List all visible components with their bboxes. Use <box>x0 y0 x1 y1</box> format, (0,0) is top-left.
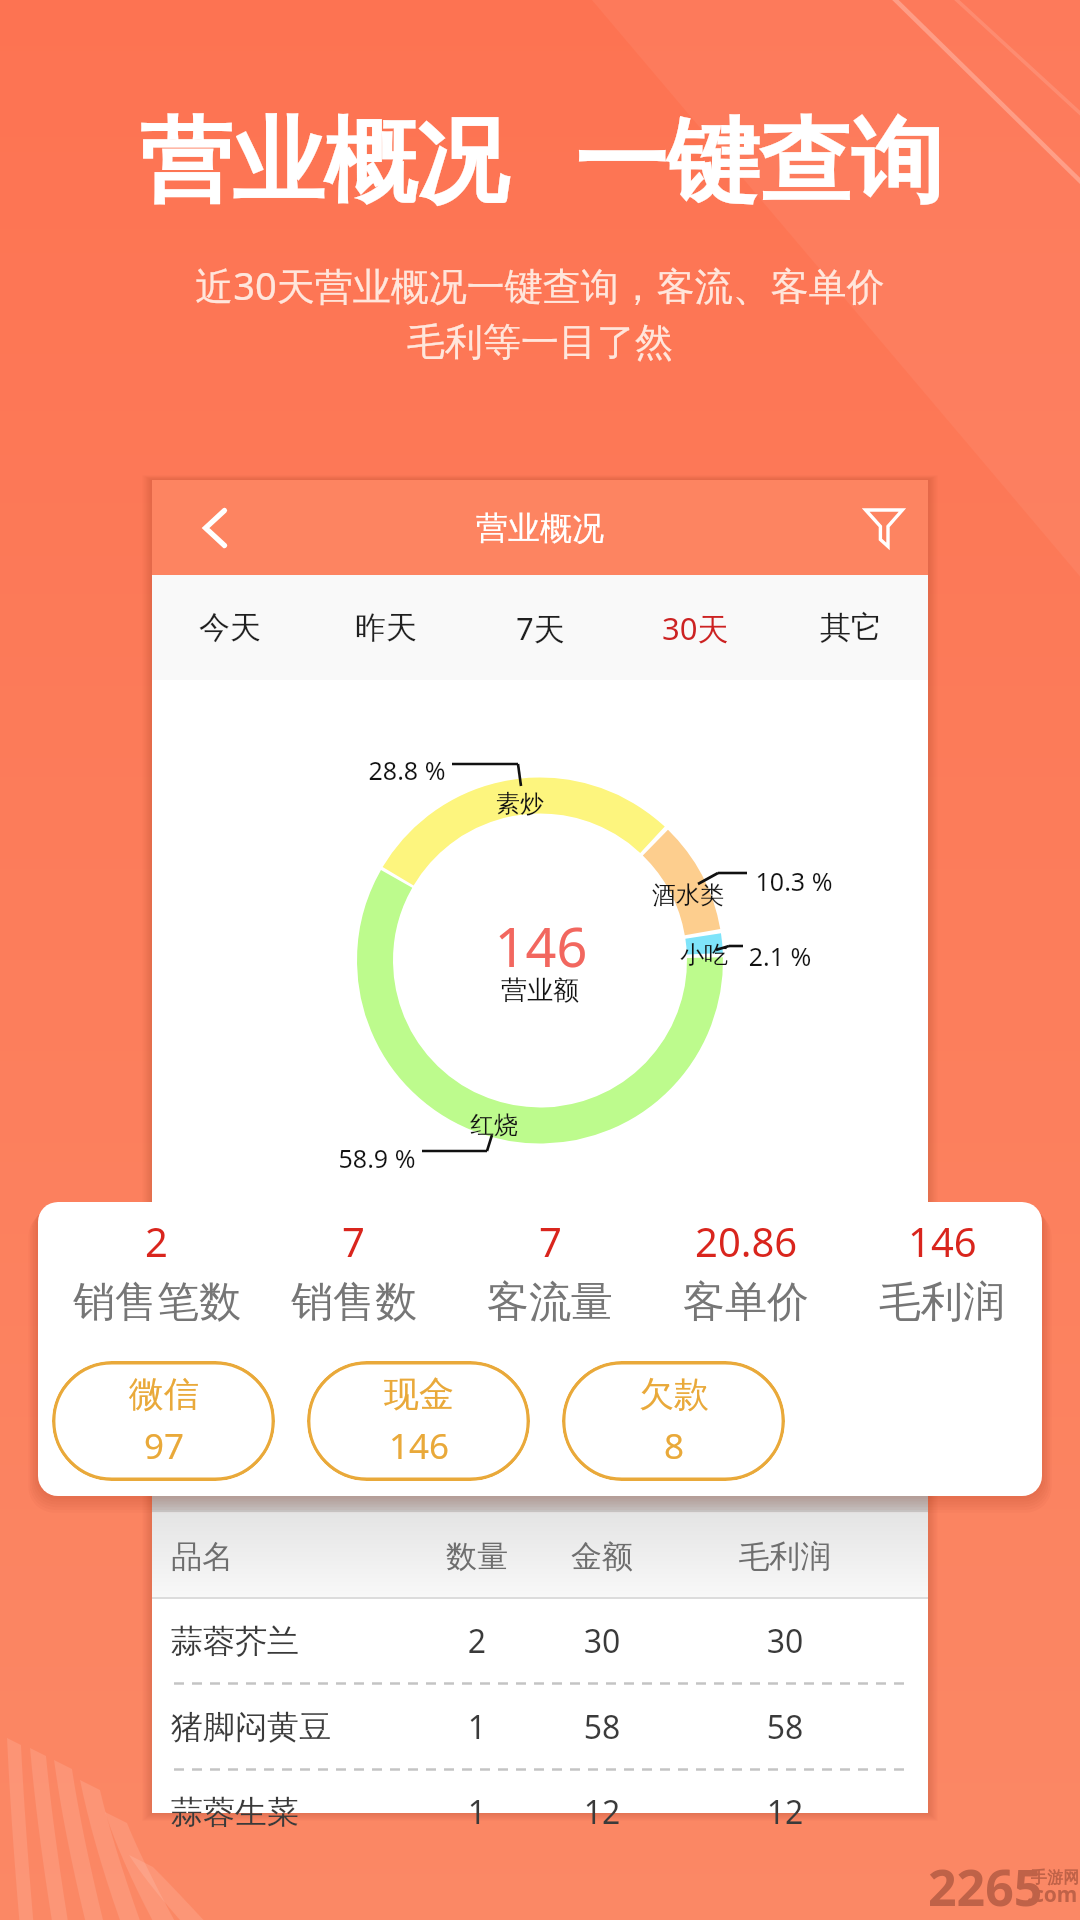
button[interactable]: 微信 <box>52 1361 275 1481</box>
staticText: 客流量 <box>487 1276 613 1329</box>
staticText: 其它 <box>820 608 882 647</box>
staticText: 猪脚闷黄豆 <box>171 1707 331 1747</box>
staticText: 营业概况 <box>476 508 604 548</box>
staticText: 毛利润 <box>715 1537 855 1576</box>
staticText: 97 <box>144 1422 185 1470</box>
staticText: 12 <box>542 1790 662 1834</box>
button[interactable]: 30天 <box>618 575 773 680</box>
staticText: 昨天 <box>355 608 417 647</box>
staticText: .com <box>1027 1880 1078 1909</box>
staticText: 销售数 <box>291 1276 417 1329</box>
button[interactable]: 其它 <box>773 575 928 680</box>
button[interactable]: 昨天 <box>308 575 463 680</box>
button[interactable]: 现金 <box>307 1361 530 1481</box>
staticText: 2265 <box>928 1853 1043 1920</box>
staticText: 1 <box>417 1790 537 1834</box>
staticText: 2.1 % <box>580 939 980 973</box>
staticText: 营业概况 <box>140 104 508 220</box>
staticText: 30 <box>542 1619 662 1663</box>
staticText: 手游网 <box>1031 1868 1079 1888</box>
staticText: 红烧 <box>294 1110 694 1140</box>
staticText: 近30天营业概况一键查询，客流、客单价 <box>0 259 1080 311</box>
staticText: 数量 <box>417 1537 537 1576</box>
staticText: 30 <box>715 1619 855 1663</box>
staticText: 金额 <box>542 1537 662 1576</box>
button[interactable]: 今天 <box>152 575 308 680</box>
staticText: 58.9 % <box>177 1141 577 1175</box>
staticText: 毛利等一目了然 <box>0 318 1080 366</box>
staticText: 7 <box>539 1214 562 1268</box>
staticText: 28.8 % <box>207 753 607 787</box>
staticText: 146 <box>908 1214 977 1268</box>
staticText: 12 <box>715 1790 855 1834</box>
button[interactable]: Filter <box>852 496 916 560</box>
staticText: 欠款 <box>639 1372 709 1416</box>
staticText: 7 <box>342 1214 365 1268</box>
staticText: 146 <box>389 1422 450 1470</box>
staticText: 20.86 <box>695 1214 798 1268</box>
staticText: 毛利润 <box>879 1276 1005 1329</box>
staticText: 一键查询 <box>575 104 943 220</box>
staticText: 蒜蓉生菜 <box>171 1792 299 1832</box>
staticText: 酒水类 <box>488 880 888 910</box>
staticText: 素炒 <box>320 789 720 819</box>
staticText: 现金 <box>384 1372 454 1416</box>
button[interactable]: 欠款 <box>562 1361 785 1481</box>
staticText: 今天 <box>199 608 261 647</box>
button[interactable]: Back <box>183 496 247 560</box>
staticText: 客单价 <box>683 1276 809 1329</box>
staticText: 1 <box>417 1705 537 1749</box>
staticText: 2 <box>145 1214 168 1268</box>
staticText: 微信 <box>129 1372 199 1416</box>
staticText: 7天 <box>516 607 565 649</box>
staticText: 蒜蓉芥兰 <box>171 1621 299 1661</box>
staticText: 8 <box>664 1422 685 1470</box>
staticText: 58 <box>715 1705 855 1749</box>
staticText: 小吃 <box>504 940 904 970</box>
staticText: 10.3 % <box>594 864 994 898</box>
staticText: 58 <box>542 1705 662 1749</box>
staticText: 2 <box>417 1619 537 1663</box>
staticText: 146 <box>341 909 741 983</box>
staticText: 营业额 <box>340 974 740 1007</box>
staticText: 销售笔数 <box>73 1276 241 1329</box>
staticText: 品名 <box>171 1537 233 1576</box>
button[interactable]: 7天 <box>463 575 618 680</box>
staticText: 30天 <box>662 607 729 649</box>
